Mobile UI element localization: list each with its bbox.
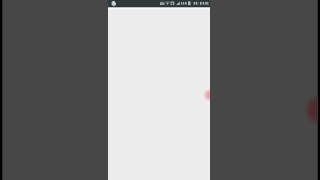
- button[interactable]: Status bar: [108, 0, 210, 7]
- button[interactable]: System status: wifi, signal, 73% battery…: [152, 0, 210, 7]
- button[interactable]: App content: [108, 0, 210, 180]
- button[interactable]: Notifications: [108, 0, 120, 7]
